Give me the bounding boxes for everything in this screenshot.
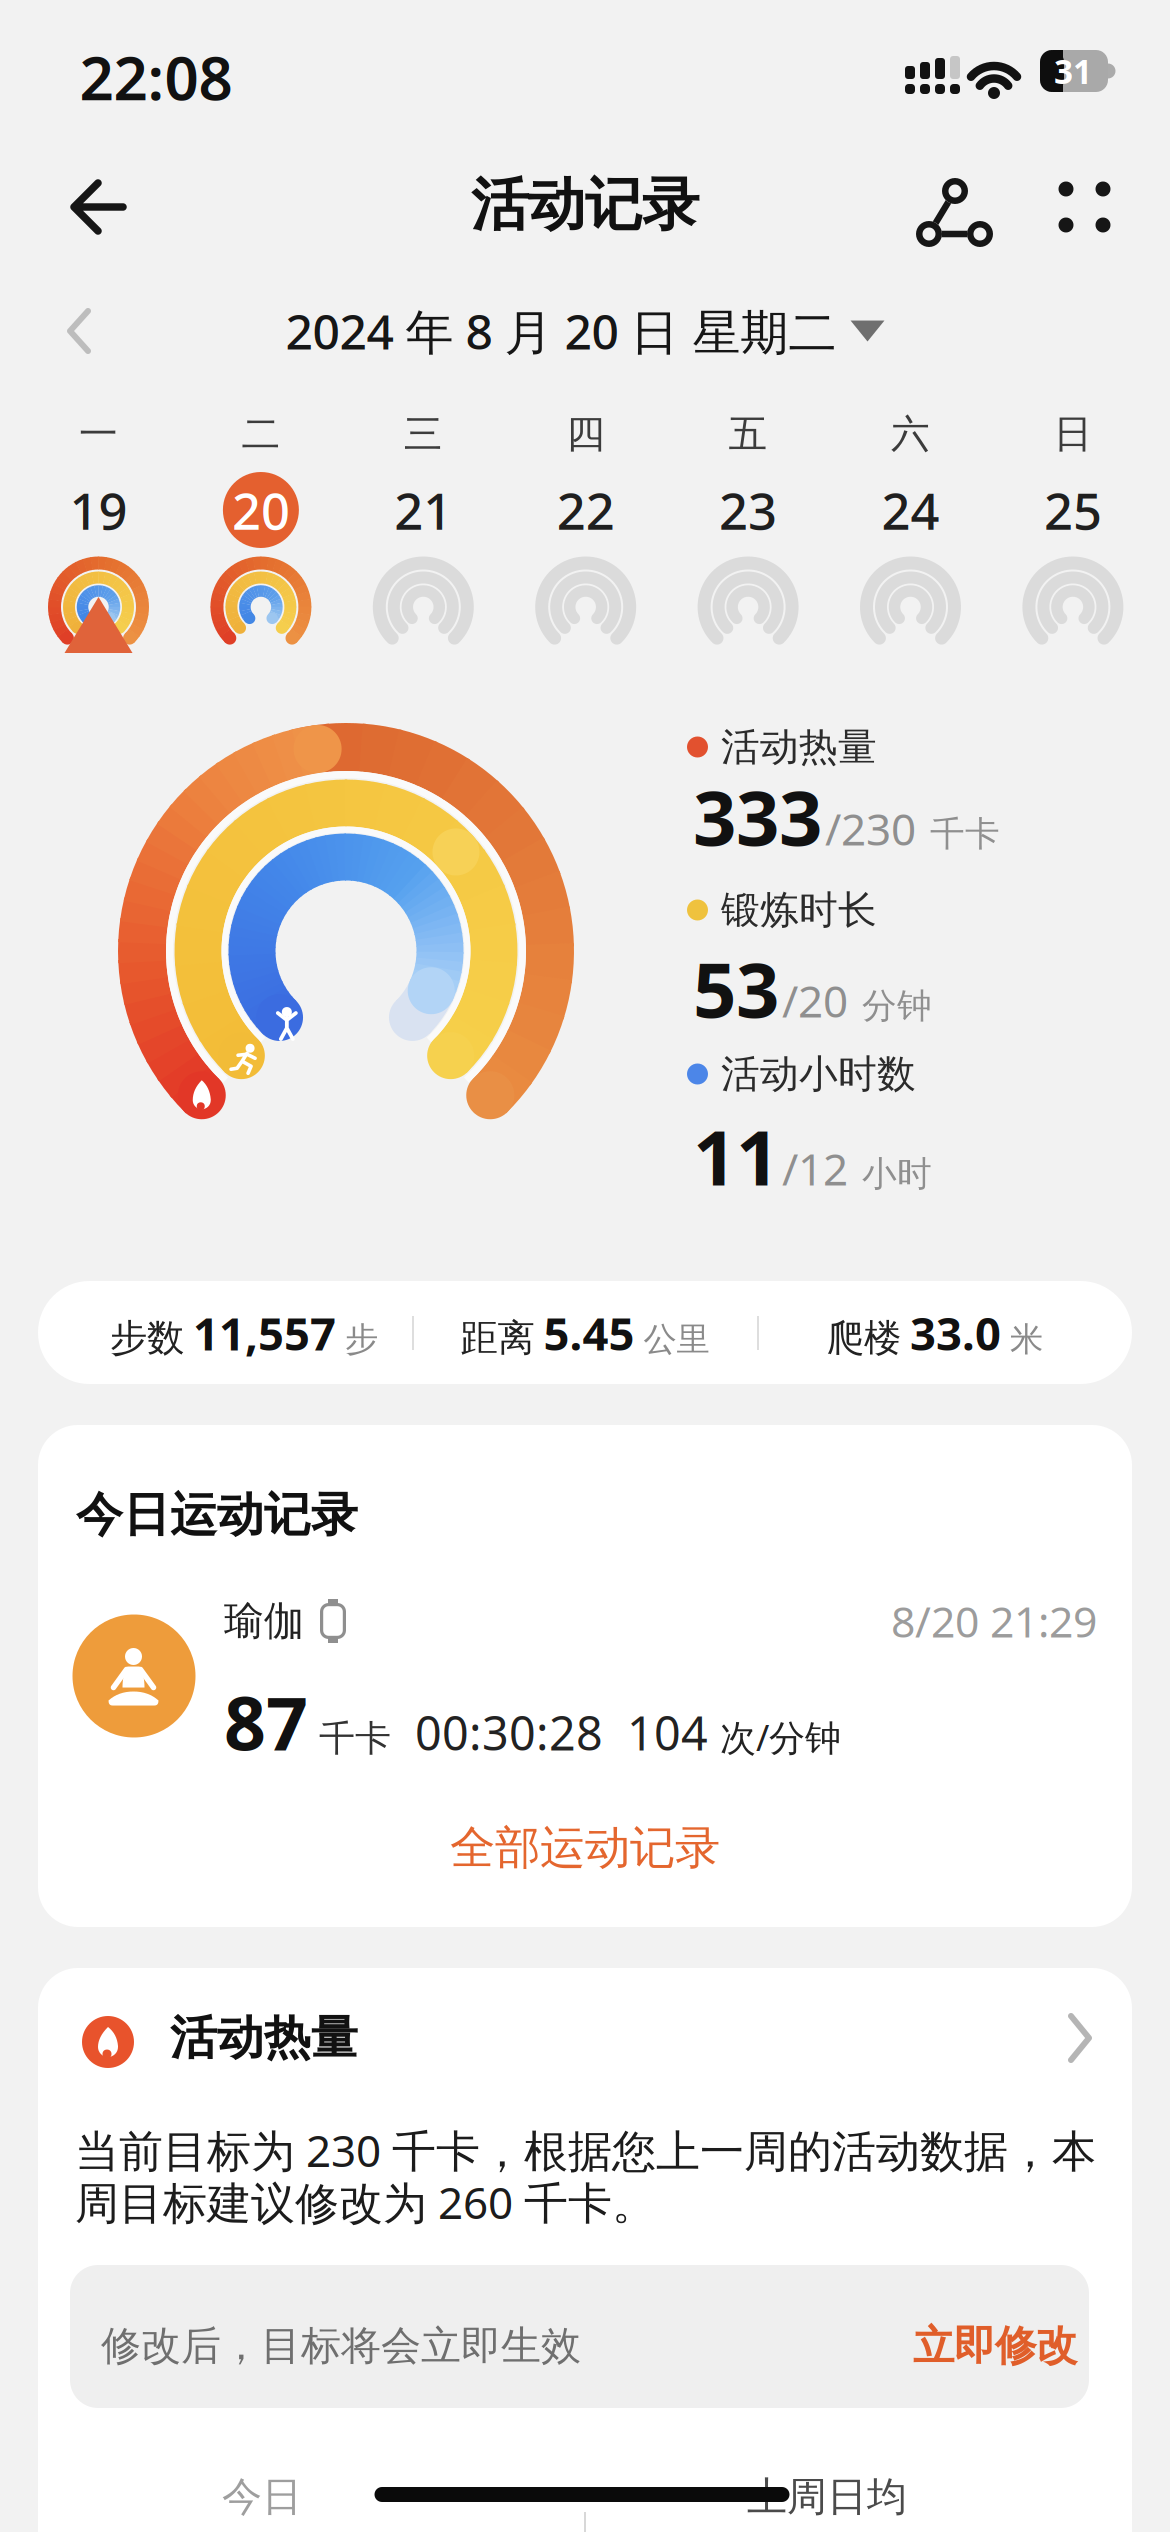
button[interactable]: 25 [1008, 472, 1138, 657]
button[interactable] [72, 183, 126, 231]
staticText: 22:08 [79, 37, 232, 117]
staticText: 步 [345, 1319, 378, 1360]
staticText: 日 [1053, 410, 1092, 458]
staticText: 5.45 [543, 1303, 634, 1363]
staticText: 六 [891, 410, 930, 458]
button[interactable]: 全部运动记录 [415, 1813, 755, 1883]
button[interactable]: 2024 年 8 月 20 日 星期二 [285, 299, 884, 363]
staticText: 活动热量 [170, 2009, 358, 2067]
staticText: 全部运动记录 [450, 1820, 720, 1876]
button[interactable] [1058, 181, 1110, 233]
staticText: 当前目标为 230 千卡，根据您上一周的活动数据，本 [75, 2121, 1096, 2179]
staticText: 53 [693, 937, 779, 1038]
staticText: /20 [782, 971, 859, 1030]
staticText: 104 [603, 1701, 720, 1763]
staticText: 锻炼时长 [721, 886, 877, 934]
staticText: 21 [394, 476, 452, 544]
staticText: 00:30:28 [391, 1701, 603, 1763]
staticText: 千卡 [308, 1716, 391, 1761]
staticText: 11,557 [193, 1303, 336, 1363]
staticText: 33.0 [910, 1303, 1001, 1363]
staticText: 一 [79, 410, 118, 458]
staticText: 千卡 [930, 813, 1000, 855]
button[interactable]: 今日 [182, 2467, 342, 2527]
button[interactable]: 19 [33, 472, 163, 657]
staticText: 22 [557, 476, 615, 544]
staticText: 小时 [862, 1153, 932, 1195]
staticText: 周目标建议修改为 260 千卡。 [75, 2173, 656, 2231]
staticText: 24 [881, 476, 939, 544]
staticText: 31 [1054, 49, 1092, 93]
staticText: 11 [693, 1105, 779, 1206]
staticText: 活动记录 [471, 170, 699, 240]
staticText: 活动热量 [721, 723, 877, 771]
staticText: 瑜伽 [224, 1596, 304, 1645]
staticText: 次/分钟 [720, 1713, 841, 1761]
staticText: /12 [782, 1139, 859, 1198]
staticText: 公里 [643, 1319, 709, 1360]
staticText: 步数 [110, 1315, 184, 1361]
button[interactable]: 活动热量 [38, 2005, 1132, 2075]
staticText: 25 [1044, 476, 1102, 544]
button[interactable]: 22 [521, 472, 651, 657]
button[interactable]: 立即修改 [895, 2306, 1095, 2386]
staticText: 四 [566, 410, 605, 458]
staticText: 19 [69, 476, 127, 544]
staticText: 今日 [222, 2472, 302, 2521]
staticText: 333 [693, 765, 822, 866]
staticText: 上周日均 [747, 2472, 907, 2521]
staticText: 分钟 [862, 985, 932, 1027]
staticText: 今日运动记录 [76, 1486, 358, 1544]
button[interactable] [916, 176, 988, 238]
staticText: 米 [1010, 1319, 1043, 1360]
staticText: 三 [404, 410, 443, 458]
staticText: 五 [729, 410, 768, 458]
staticText: 立即修改 [913, 2321, 1077, 2371]
staticText: 距离 [460, 1315, 534, 1361]
button[interactable]: 21 [358, 472, 488, 657]
staticText: 修改后，目标将会立即生效 [101, 2321, 581, 2370]
staticText: /230 [825, 799, 927, 858]
staticText: 23 [719, 476, 777, 544]
staticText: 2024 年 8 月 20 日 星期二 [285, 299, 836, 363]
staticText: 87 [224, 1673, 308, 1771]
button[interactable]: 23 [683, 472, 813, 657]
staticText: 活动小时数 [721, 1050, 916, 1098]
staticText: 20 [232, 476, 290, 544]
button[interactable]: 上周日均 [717, 2467, 937, 2527]
staticText: 8/20 21:29 [891, 1593, 1097, 1649]
staticText: 爬楼 [827, 1315, 901, 1361]
button[interactable]: 20 [196, 472, 326, 657]
button[interactable]: 24 [845, 472, 975, 657]
staticText: 二 [241, 410, 280, 458]
button[interactable]: 瑜伽 [38, 1601, 1132, 1751]
